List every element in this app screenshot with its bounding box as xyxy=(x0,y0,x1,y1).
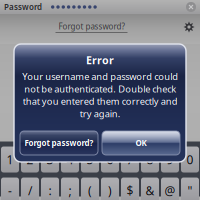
staticText: 3 xyxy=(46,151,53,167)
staticText: 4 xyxy=(66,151,73,167)
button[interactable]: 4 xyxy=(61,146,79,172)
staticText: 2 xyxy=(26,151,33,167)
staticText: 1 xyxy=(6,151,13,167)
button[interactable]: & xyxy=(141,177,159,200)
button[interactable]: : xyxy=(41,177,59,200)
button[interactable]: " xyxy=(181,177,199,200)
button[interactable]: 2 xyxy=(21,146,39,172)
staticText: Your username and password could not be … xyxy=(22,70,178,120)
staticText: $ xyxy=(126,182,133,198)
button[interactable]: ( xyxy=(81,177,99,200)
button[interactable]: / xyxy=(21,177,39,200)
staticText: Error xyxy=(86,53,114,67)
button[interactable]: 3 xyxy=(41,146,59,172)
button[interactable]: 5 xyxy=(81,146,99,172)
button[interactable]: 6 xyxy=(101,146,119,172)
staticText: 0 xyxy=(186,151,193,167)
button[interactable]: Clear password xyxy=(185,1,197,13)
button[interactable]: $ xyxy=(121,177,139,200)
button[interactable]: 8 xyxy=(141,146,159,172)
button[interactable]: 7 xyxy=(121,146,139,172)
button[interactable]: ; xyxy=(61,177,79,200)
staticText: 8 xyxy=(146,151,153,167)
staticText: ) xyxy=(108,182,112,198)
button[interactable]: 0 xyxy=(181,146,199,172)
staticText: Forgot password? xyxy=(24,138,93,148)
button[interactable]: OK xyxy=(102,131,180,155)
staticText: / xyxy=(28,182,32,198)
staticText: : xyxy=(48,182,51,198)
staticText: ( xyxy=(88,182,92,198)
button[interactable]: Forgot password? xyxy=(20,131,98,155)
button[interactable]: 9 xyxy=(161,146,179,172)
staticText: - xyxy=(8,182,12,198)
staticText: Forgot password? xyxy=(58,21,124,32)
button[interactable]: @ xyxy=(161,177,179,200)
staticText: 9 xyxy=(166,151,173,167)
button[interactable]: Forgot password? xyxy=(53,21,129,33)
staticText: Password xyxy=(4,2,42,12)
staticText: 5 xyxy=(86,151,93,167)
button[interactable]: Settings xyxy=(183,21,195,33)
staticText: " xyxy=(187,182,192,198)
staticText: & xyxy=(145,182,154,198)
staticText: 7 xyxy=(126,151,133,167)
staticText: 6 xyxy=(106,151,113,167)
button[interactable]: ) xyxy=(101,177,119,200)
button[interactable]: - xyxy=(1,177,19,200)
staticText: @ xyxy=(164,182,175,198)
button[interactable]: 1 xyxy=(1,146,19,172)
staticText: OK xyxy=(135,138,146,148)
staticText: ; xyxy=(68,182,71,198)
